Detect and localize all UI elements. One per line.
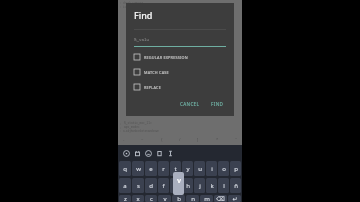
staticText: p <box>234 165 238 173</box>
staticText: d <box>149 182 153 190</box>
button[interactable]: w <box>132 161 144 176</box>
staticText: o <box>222 165 226 173</box>
button[interactable]: i <box>206 161 217 176</box>
button[interactable]: b <box>172 195 185 202</box>
staticText: w <box>136 165 141 173</box>
button[interactable]: ↵ <box>228 195 241 202</box>
staticText: REGULAR EXPRESSION <box>144 55 188 60</box>
staticText: e <box>149 165 153 173</box>
staticText: k <box>210 182 214 190</box>
button[interactable]: c <box>145 195 157 202</box>
staticText: n <box>191 195 195 202</box>
staticText: t <box>174 165 177 173</box>
staticText: chock_sum=yes <box>123 1 144 5</box>
staticText: f <box>162 182 165 190</box>
button[interactable]: s <box>132 178 144 193</box>
staticText: i <box>211 165 213 173</box>
staticText: l <box>223 182 225 190</box>
button[interactable]: Theme <box>132 148 143 159</box>
button[interactable]: Clipboard <box>154 148 165 159</box>
staticText: r <box>162 165 165 173</box>
button[interactable]: l <box>218 178 229 193</box>
staticText: %_valu <box>134 37 150 43</box>
button[interactable]: k <box>206 178 217 193</box>
staticText: { <box>161 137 163 142</box>
button[interactable]: ⌫ <box>214 195 227 202</box>
staticText: FIND <box>211 101 224 107</box>
staticText: CANCEL <box>180 101 200 107</box>
staticText: h <box>186 182 190 190</box>
staticText: u <box>198 165 202 173</box>
button[interactable]: FIND <box>209 99 226 109</box>
staticText: / <box>179 137 181 142</box>
staticText: MATCH CASE <box>144 70 169 75</box>
staticText: v <box>163 195 167 202</box>
staticText: c <box>150 195 153 202</box>
button[interactable]: n <box>186 195 199 202</box>
button[interactable]: REGULAR EXPRESSION <box>134 54 226 60</box>
button[interactable]: h <box>182 178 193 193</box>
staticText: m <box>204 195 210 202</box>
staticText: a <box>123 182 127 190</box>
button[interactable]: Settings <box>165 148 176 159</box>
button[interactable]: e <box>145 161 157 176</box>
staticText: REPLACE <box>144 85 162 90</box>
staticText: * <box>216 137 219 142</box>
button[interactable]: r <box>158 161 169 176</box>
button[interactable]: t <box>170 161 181 176</box>
button[interactable]: Emoji <box>143 148 154 159</box>
staticText: " <box>235 137 237 142</box>
staticText: s <box>137 182 140 190</box>
button[interactable]: g <box>170 178 181 193</box>
button[interactable]: x <box>132 195 144 202</box>
button[interactable]: q <box>119 161 131 176</box>
staticText: wps_mode= <box>124 125 140 129</box>
button[interactable]: z <box>119 195 131 202</box>
button[interactable]: p <box>230 161 241 176</box>
button[interactable]: MATCH CASE <box>134 69 226 75</box>
button[interactable]: o <box>218 161 229 176</box>
button[interactable]: u <box>194 161 205 176</box>
button[interactable]: y <box>182 161 193 176</box>
button[interactable]: %_valu <box>134 37 226 47</box>
staticText: is_t2fa_bsc_name=inside <box>123 5 159 9</box>
button[interactable]: m <box>200 195 213 202</box>
staticText: j <box>199 182 201 190</box>
staticText: v <box>177 176 181 186</box>
staticText: %_static_mac_11= <box>124 121 152 125</box>
staticText: q <box>123 165 127 173</box>
button[interactable]: v <box>158 195 171 202</box>
button[interactable]: j <box>194 178 205 193</box>
staticText: a-wkjhwnb=nbrtxnwerbnwe <box>123 129 159 133</box>
button[interactable]: f <box>158 178 169 193</box>
button[interactable]: REPLACE <box>134 84 226 90</box>
staticText: x <box>136 195 140 202</box>
button[interactable]: ñ <box>230 178 241 193</box>
button[interactable]: d <box>145 178 157 193</box>
button[interactable]: Sticker <box>121 148 132 159</box>
staticText: Find <box>134 9 153 21</box>
button[interactable]: a <box>119 178 131 193</box>
staticText: b <box>177 195 181 202</box>
button[interactable]: CANCEL <box>178 99 202 109</box>
staticText: ⌫ <box>216 195 225 202</box>
staticText: ] <box>197 137 199 142</box>
staticText: ñ <box>234 182 238 190</box>
staticText: ↵ <box>232 195 238 202</box>
staticText: y <box>186 165 190 173</box>
staticText: z <box>124 195 127 202</box>
